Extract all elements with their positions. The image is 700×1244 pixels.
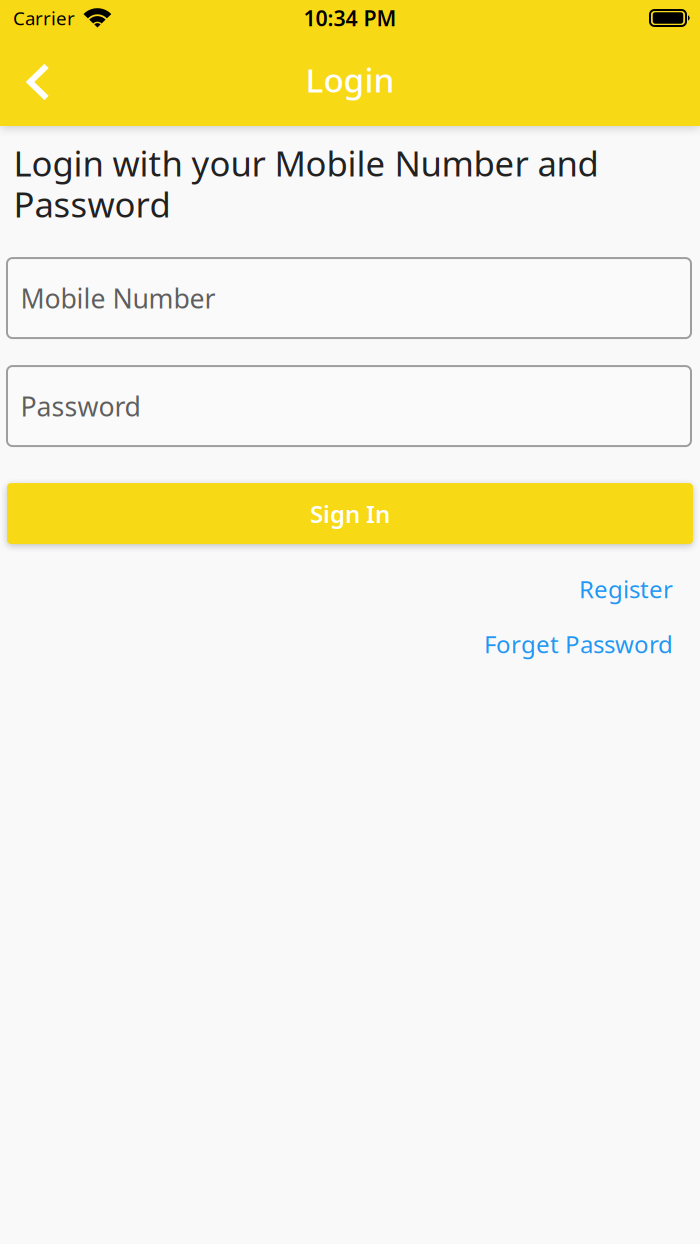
button[interactable]: Password xyxy=(7,366,691,446)
staticText: Login with your Mobile Number and Passwo… xyxy=(13,140,598,227)
staticText: Mobile Number xyxy=(20,280,215,316)
staticText: Forget Password xyxy=(484,628,673,660)
staticText: Login xyxy=(305,57,394,102)
staticText: Register xyxy=(579,573,673,605)
button[interactable]: Back xyxy=(0,43,94,115)
staticText: Password xyxy=(20,388,140,424)
button[interactable]: Mobile Number xyxy=(7,258,691,338)
button[interactable]: Sign In xyxy=(7,483,693,544)
staticText: Carrier xyxy=(13,6,75,30)
staticText: 10:34 PM xyxy=(303,4,396,32)
staticText: Sign In xyxy=(310,498,390,529)
button[interactable]: Forget Password xyxy=(0,611,700,666)
button[interactable]: Register xyxy=(0,544,700,611)
